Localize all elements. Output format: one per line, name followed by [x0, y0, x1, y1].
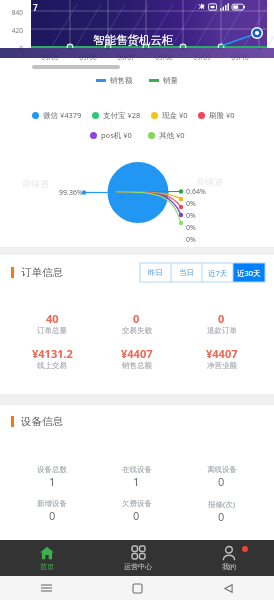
staticText: 订单总量	[37, 326, 67, 335]
staticText: 0	[133, 508, 140, 523]
button[interactable]: 昨日	[140, 263, 171, 282]
staticText: 0.64%	[186, 187, 206, 197]
staticText: 订单信息	[21, 266, 63, 279]
staticText: ¥4407	[121, 346, 153, 361]
staticText: 报修(次)	[208, 499, 235, 509]
staticText: 销量	[163, 76, 178, 85]
staticText: 1	[49, 474, 56, 489]
staticText: 在线设备	[122, 465, 152, 474]
staticText: 0	[218, 474, 225, 489]
staticText: 09/09	[183, 53, 221, 62]
staticText: 交易失败	[122, 326, 152, 335]
staticText: 09/05	[31, 53, 69, 62]
staticText: 09/07	[107, 53, 145, 62]
staticText: 09/08	[145, 53, 183, 62]
staticText: 0	[49, 508, 56, 523]
staticText: 840	[0, 8, 23, 17]
staticText: 销售额	[110, 76, 133, 85]
staticText: 0%	[186, 235, 196, 245]
staticText: ¥4131.2	[32, 346, 73, 361]
staticText: 0%	[186, 199, 196, 209]
staticText: 线上交易	[37, 361, 67, 370]
staticText: 0%	[186, 223, 196, 233]
staticText: 设备总数	[37, 465, 67, 474]
staticText: 现金 ¥0	[162, 110, 188, 120]
staticText: 我的	[222, 562, 236, 571]
button[interactable]: 近7天	[202, 263, 233, 282]
staticText: 当日	[179, 268, 194, 277]
staticText: 420	[0, 26, 23, 35]
button[interactable]: Back	[183, 576, 274, 600]
staticText: 支付宝 ¥28	[103, 110, 141, 120]
staticText: 09/06	[69, 53, 107, 62]
button[interactable]: 当日	[171, 263, 202, 282]
staticText: 刷脸 ¥0	[209, 110, 235, 120]
staticText: 99.36%	[59, 188, 83, 198]
staticText: 离线设备	[207, 465, 237, 474]
staticText: 商铺通	[196, 176, 223, 187]
staticText: 昨日	[148, 268, 163, 277]
staticText: 首页	[40, 562, 54, 571]
button[interactable]: 我的	[183, 540, 274, 576]
staticText: 智能售货机云柜	[93, 33, 174, 47]
staticText: 净营业额	[207, 361, 237, 370]
staticText: 40	[46, 311, 59, 326]
staticText: 欠费设备	[122, 499, 152, 508]
button[interactable]: 近30天	[233, 263, 265, 282]
staticText: 退款订单	[207, 326, 237, 335]
button[interactable]: Home	[92, 576, 183, 600]
staticText: 其他 ¥0	[159, 130, 185, 140]
staticText: 商铺通	[22, 178, 49, 189]
button[interactable]: Recent apps	[0, 576, 92, 600]
staticText: 近30天	[237, 268, 261, 278]
staticText: 0	[218, 311, 225, 326]
button[interactable]: 运营中心	[92, 540, 183, 576]
staticText: 0%	[186, 211, 196, 221]
staticText: 1	[133, 474, 140, 489]
staticText: 新增设备	[37, 499, 67, 508]
staticText: ¥4407	[206, 346, 238, 361]
staticText: 运营中心	[124, 562, 152, 571]
staticText: 09/10	[221, 53, 259, 62]
staticText: 销售总额	[122, 361, 152, 370]
staticText: pos机 ¥0	[101, 130, 132, 140]
staticText: 设备信息	[21, 415, 63, 428]
staticText: 7	[33, 2, 38, 13]
staticText: 0	[0, 44, 23, 53]
staticText: 0	[133, 311, 140, 326]
button[interactable]: 首页	[0, 540, 92, 576]
staticText: 0	[218, 509, 225, 524]
staticText: 近7天	[208, 268, 228, 278]
staticText: 微信 ¥4379	[43, 110, 82, 120]
